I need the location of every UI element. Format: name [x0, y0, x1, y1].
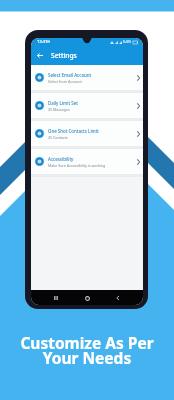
- button[interactable]: Accessibility: [31, 149, 143, 174]
- button[interactable]: Back: [112, 292, 124, 304]
- button[interactable]: One Shot Contacts Limit: [31, 121, 143, 146]
- staticText: Select Email Account: [48, 72, 92, 78]
- button[interactable]: Recent apps: [50, 292, 62, 304]
- staticText: Settings: [51, 51, 77, 60]
- staticText: Customize As Per Your Needs: [0, 332, 174, 368]
- staticText: Make Sure Accessibility is working: [48, 163, 106, 168]
- staticText: One Shot Contacts Limit: [48, 128, 99, 134]
- staticText: Accessibility: [48, 156, 74, 162]
- staticText: 25 Messages: [48, 107, 70, 112]
- button[interactable]: Home: [81, 292, 93, 304]
- staticText: 54%: [123, 39, 132, 45]
- staticText: Daily Limit Set: [48, 100, 78, 106]
- staticText: Select from Account: [48, 79, 82, 84]
- staticText: 13:31: [37, 39, 48, 45]
- button[interactable]: Select Email Account: [31, 65, 143, 90]
- staticText: 25 Contacts: [48, 135, 68, 140]
- button[interactable]: Back: [33, 45, 46, 65]
- button[interactable]: Daily Limit Set: [31, 93, 143, 118]
